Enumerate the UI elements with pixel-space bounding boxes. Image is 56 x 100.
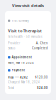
- staticText: A. Chen: [36, 41, 48, 45]
- staticText: Completed: [32, 46, 48, 50]
- staticText: Payment: [12, 69, 25, 72]
- staticText: Mon, Mar 18 2024: [8, 61, 34, 64]
- staticText: Telehealth · 50 minutes: [8, 35, 42, 38]
- staticText: Total: [8, 86, 14, 90]
- staticText: $24.00: [37, 86, 48, 90]
- staticText: Provider: [8, 41, 20, 45]
- staticText: Visit to Therapist: [8, 28, 42, 33]
- staticText: Status: [8, 46, 15, 50]
- staticText: Visit summary: [12, 19, 29, 22]
- staticText: $120.00: [35, 76, 48, 79]
- staticText: Appointment: [12, 55, 32, 59]
- staticText: View visit details: [12, 3, 44, 8]
- staticText: Visa ···· 4242: [8, 76, 28, 79]
- staticText: Charged Mar 18, 2024: [8, 80, 40, 84]
